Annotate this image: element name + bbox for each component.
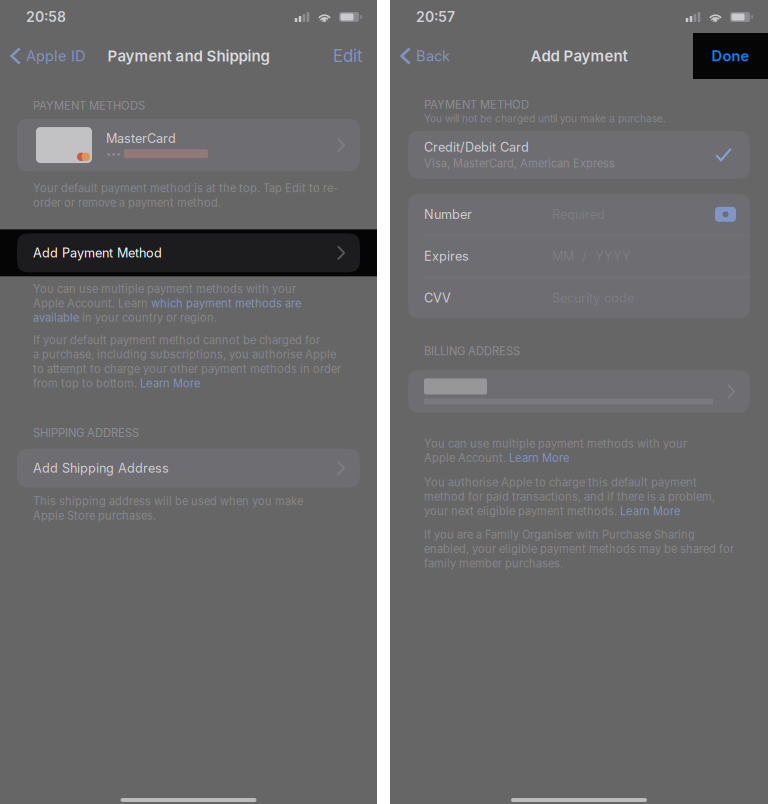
staticText: your next eligible payment methods.	[424, 504, 620, 518]
staticText: available	[33, 311, 79, 324]
staticText: Edit	[333, 46, 362, 66]
staticText: Visa, MasterCard, American Express	[424, 157, 615, 170]
staticText: MM / YYYY	[552, 248, 631, 264]
staticText: Apple Account. Learn	[33, 297, 151, 310]
staticText: Back	[416, 47, 450, 65]
button[interactable]	[390, 370, 768, 413]
staticText: order or remove a payment method.	[33, 196, 221, 209]
staticText: If your default payment method cannot be…	[33, 333, 320, 347]
staticText: 20:57	[416, 8, 455, 25]
staticText: PAYMENT METHODS	[33, 99, 145, 113]
staticText: Learn More	[140, 377, 200, 390]
staticText: PAYMENT METHOD	[424, 98, 529, 112]
staticText: Apple ID	[26, 47, 86, 65]
staticText: family member purchases.	[424, 557, 563, 570]
staticText: Your default payment method is at the to…	[33, 182, 338, 195]
button[interactable]: Credit/Debit Card	[390, 131, 768, 179]
staticText: Expires	[424, 248, 469, 264]
staticText: Security code	[552, 290, 634, 305]
staticText: Learn More	[509, 451, 569, 465]
staticText: Apple Account.	[424, 451, 509, 465]
staticText: a purchase, including subscriptions, you…	[33, 348, 336, 361]
staticText: This shipping address will be used when …	[33, 495, 303, 508]
staticText: to attempt to charge your other payment …	[33, 362, 341, 376]
staticText: •••	[106, 148, 121, 159]
button[interactable]: MasterCard	[0, 119, 377, 172]
staticText: 20:58	[26, 8, 66, 25]
staticText: Payment and Shipping	[107, 47, 269, 65]
button[interactable]: Done	[693, 33, 768, 79]
staticText: If you are a Family Organiser with Purch…	[424, 528, 695, 541]
staticText: Credit/Debit Card	[424, 139, 529, 155]
staticText: You will not be charged until you make a…	[424, 113, 666, 125]
button[interactable]: Back	[390, 40, 450, 72]
staticText: from top to bottom.	[33, 377, 140, 390]
staticText: CVV	[424, 290, 451, 305]
button[interactable]: Apple ID	[0, 40, 86, 72]
button[interactable]: Edit	[318, 39, 377, 73]
staticText: Add Payment Method	[33, 245, 162, 260]
staticText: enabled, your eligible payment methods m…	[424, 542, 734, 556]
staticText: Apple Store purchases.	[33, 509, 156, 522]
staticText: You authorise Apple to charge this defau…	[424, 476, 697, 489]
staticText: method for paid transactions, and if the…	[424, 490, 715, 503]
staticText: You can use multiple payment methods wit…	[33, 282, 296, 296]
button[interactable]: Add Payment Method	[0, 229, 377, 276]
staticText: You can use multiple payment methods wit…	[424, 437, 687, 450]
staticText: MasterCard	[106, 131, 176, 146]
staticText: Required	[552, 207, 605, 222]
staticText: in your country or region.	[79, 311, 217, 324]
staticText: Number	[424, 207, 472, 222]
staticText: BILLING ADDRESS	[424, 344, 520, 358]
staticText: SHIPPING ADDRESS	[33, 426, 139, 440]
staticText: Add Shipping Address	[33, 460, 169, 476]
button[interactable]: Add Shipping Address	[0, 449, 377, 488]
staticText: Add Payment	[530, 47, 627, 65]
staticText: Learn More	[620, 504, 680, 518]
staticText: which payment methods are	[151, 297, 301, 310]
staticText: Done	[711, 47, 749, 65]
